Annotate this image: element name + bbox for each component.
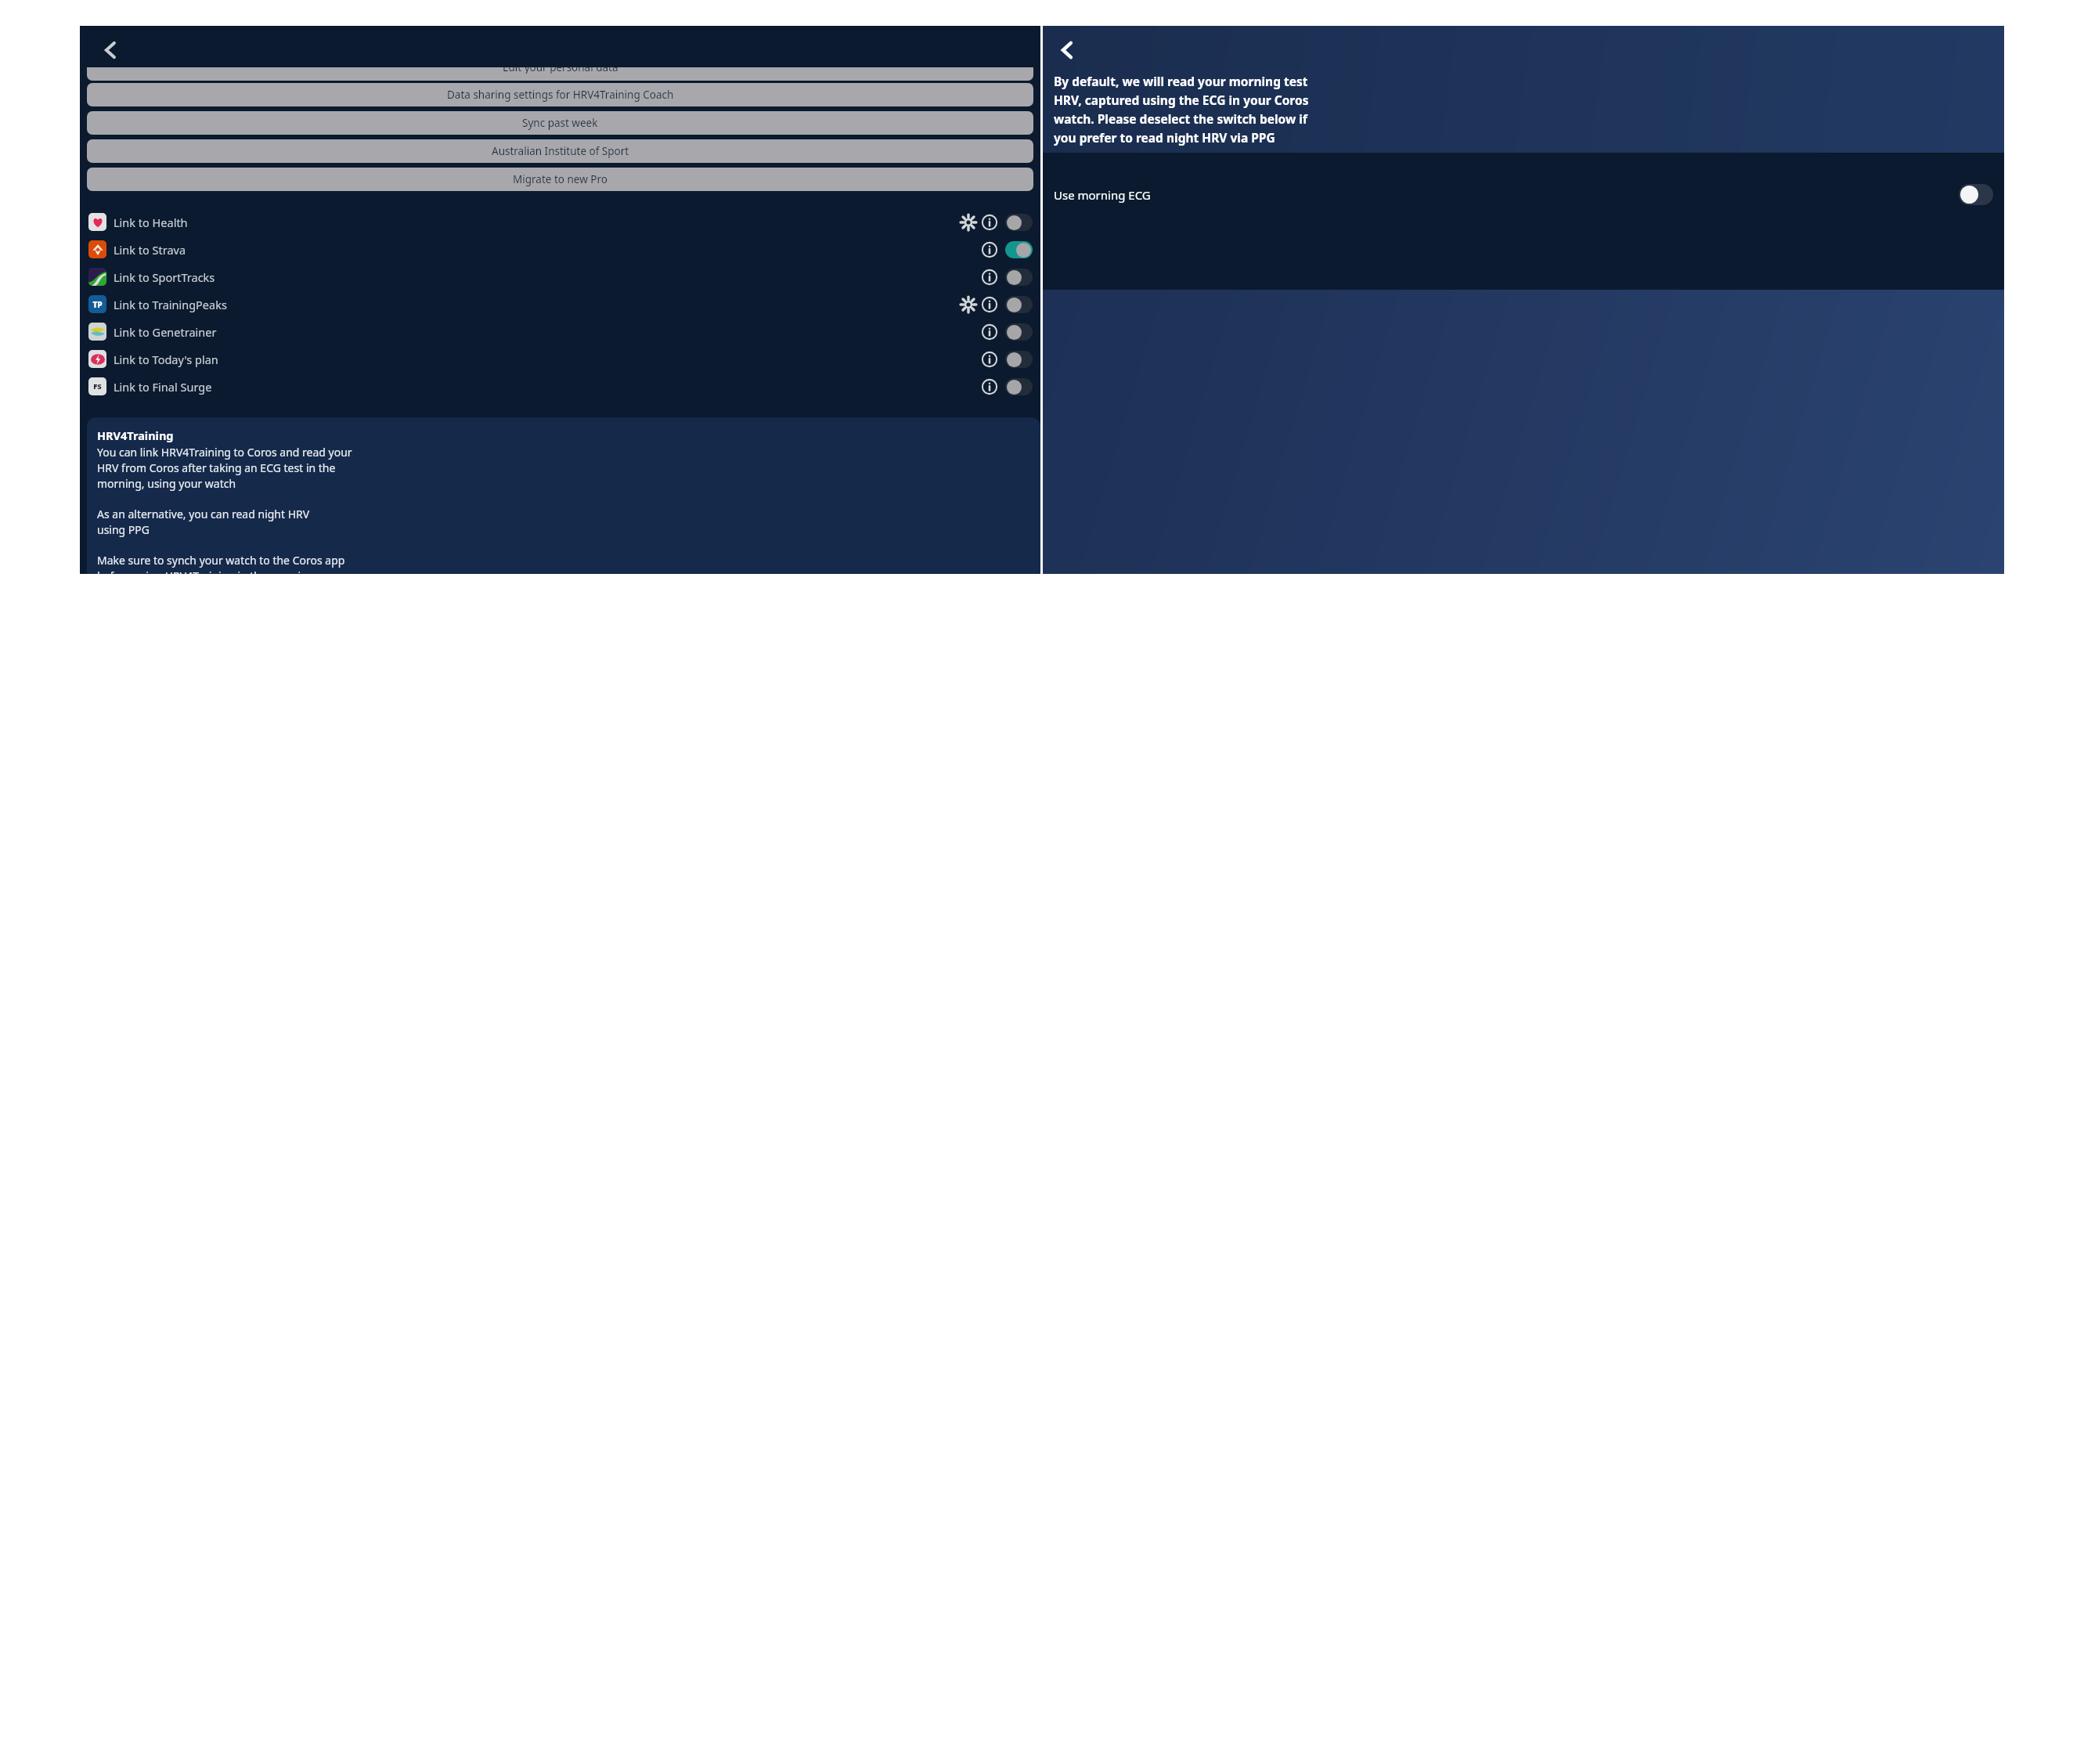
button[interactable]: Toggle: [1005, 296, 1033, 313]
button[interactable]: Toggle: [1005, 351, 1033, 368]
staticText: Migrate to new Pro: [513, 172, 608, 186]
button[interactable]: Info: [980, 377, 999, 396]
button[interactable]: Toggle: [1005, 323, 1033, 341]
button[interactable]: Info: [980, 350, 999, 369]
staticText: By default, we will read your morning te…: [1054, 73, 1309, 146]
other: Use morning ECG: [1959, 184, 1993, 205]
button[interactable]: Australian Institute of Sport: [87, 139, 1033, 163]
staticText: Link to Strava: [114, 242, 186, 258]
staticText: Link to SportTracks: [114, 269, 215, 285]
staticText: Link to Genetrainer: [114, 324, 217, 340]
button[interactable]: Link to Today's plan: [80, 345, 1040, 373]
button[interactable]: FS: [80, 373, 1040, 400]
staticText: FS: [93, 381, 102, 391]
staticText: You can link HRV4Training to Coros and r…: [97, 445, 352, 491]
button[interactable]: Link to Health: [80, 208, 1040, 236]
staticText: Use morning ECG: [1054, 187, 1151, 203]
button[interactable]: Link to Strava: [80, 236, 1040, 263]
staticText: Sync past week: [522, 116, 598, 130]
button[interactable]: Info: [980, 295, 999, 314]
button[interactable]: Toggle: [1005, 269, 1033, 286]
button[interactable]: Data sharing settings for HRV4Training C…: [87, 83, 1033, 106]
staticText: Link to Health: [114, 215, 188, 230]
button[interactable]: Settings: [959, 295, 978, 314]
button[interactable]: Back: [1051, 35, 1080, 65]
staticText: As an alternative, you can read night HR…: [97, 507, 310, 537]
button[interactable]: TP: [80, 290, 1040, 318]
button[interactable]: Toggle: [1005, 378, 1033, 395]
staticText: Link to TrainingPeaks: [114, 297, 227, 312]
staticText: Link to Final Surge: [114, 379, 212, 395]
button[interactable]: Settings: [959, 213, 978, 232]
button[interactable]: Info: [980, 213, 999, 232]
button[interactable]: Edit your personal data: [87, 67, 1033, 81]
button[interactable]: Migrate to new Pro: [87, 168, 1033, 191]
button[interactable]: Toggle: [1005, 214, 1033, 231]
button[interactable]: Back: [94, 35, 124, 65]
button[interactable]: Link to Genetrainer: [80, 318, 1040, 345]
button[interactable]: Link to SportTracks: [80, 263, 1040, 290]
button[interactable]: Toggle: [1005, 241, 1033, 258]
staticText: Edit your personal data: [503, 67, 618, 74]
button[interactable]: Info: [980, 268, 999, 287]
staticText: HRV4Training: [97, 427, 174, 443]
staticText: TP: [92, 299, 103, 310]
staticText: Australian Institute of Sport: [492, 144, 629, 158]
button[interactable]: Info: [980, 323, 999, 341]
button[interactable]: Sync past week: [87, 111, 1033, 135]
staticText: Data sharing settings for HRV4Training C…: [447, 88, 674, 102]
button[interactable]: Info: [980, 240, 999, 259]
staticText: Make sure to synch your watch to the Cor…: [97, 553, 345, 574]
staticText: Link to Today's plan: [114, 352, 218, 367]
button[interactable]: Use morning ECG: [1054, 184, 1993, 205]
